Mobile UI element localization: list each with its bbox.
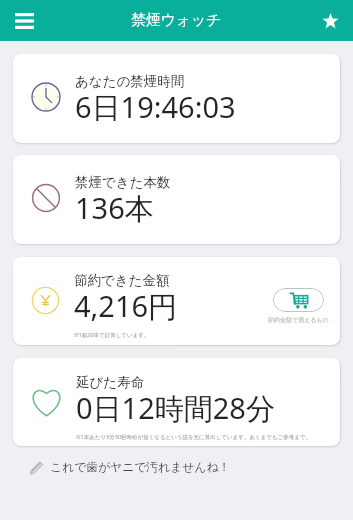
- staticText: 禁煙ウォッチ: [131, 11, 222, 30]
- button[interactable]: 延びた寿命: [13, 358, 340, 446]
- staticText: ※1箱20本で計算しています。: [74, 331, 150, 339]
- button[interactable]: あなたの禁煙時間: [13, 54, 340, 143]
- staticText: 節約金額で買えるもの: [268, 316, 329, 324]
- staticText: あなたの禁煙時間: [75, 73, 185, 90]
- staticText: 4,216円: [74, 286, 178, 326]
- staticText: 禁煙できた本数: [75, 174, 171, 191]
- staticText: 節約できた金額: [74, 272, 170, 289]
- staticText: 136本: [75, 188, 154, 228]
- button[interactable]: Favorite: [314, 5, 346, 37]
- staticText: 6日19:46:03: [75, 87, 236, 127]
- staticText: これで歯がヤニで汚れませんね！: [50, 460, 231, 475]
- staticText: 0日12時間28分: [76, 388, 275, 428]
- button[interactable]: 節約できた金額: [13, 257, 340, 345]
- staticText: ※1本あたり5分30秒寿命が短くなるという説を元に算出しています。あくまでもご参…: [76, 433, 311, 441]
- button[interactable]: Shop: [273, 288, 324, 312]
- staticText: 延びた寿命: [76, 374, 145, 391]
- button[interactable]: 禁煙できた本数: [13, 155, 340, 244]
- button[interactable]: Menu: [7, 4, 41, 38]
